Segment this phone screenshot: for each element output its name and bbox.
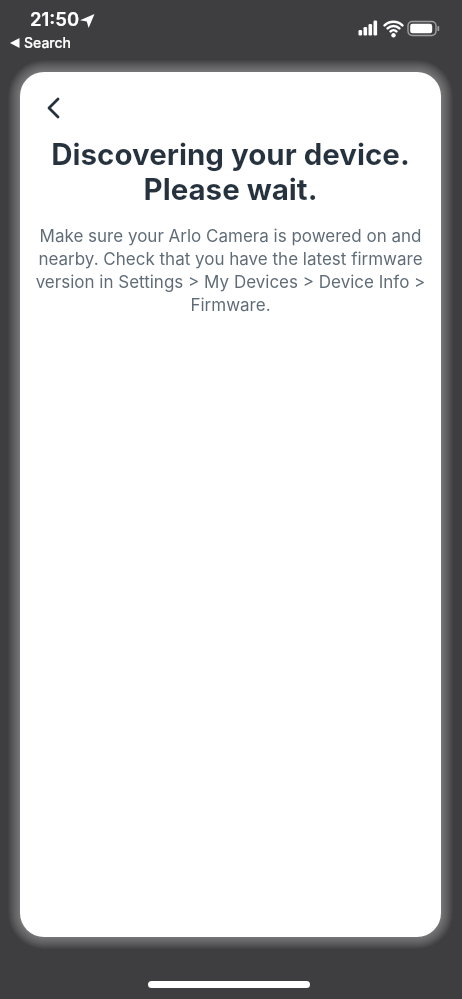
staticText: Discovering your device. Please wait. (20, 136, 441, 207)
staticText: 21:50 (30, 8, 80, 30)
button[interactable]: Search (10, 34, 72, 51)
staticText: Make sure your Arlo Camera is powered on… (20, 226, 441, 316)
staticText: Search (24, 34, 72, 51)
button[interactable] (36, 88, 72, 124)
